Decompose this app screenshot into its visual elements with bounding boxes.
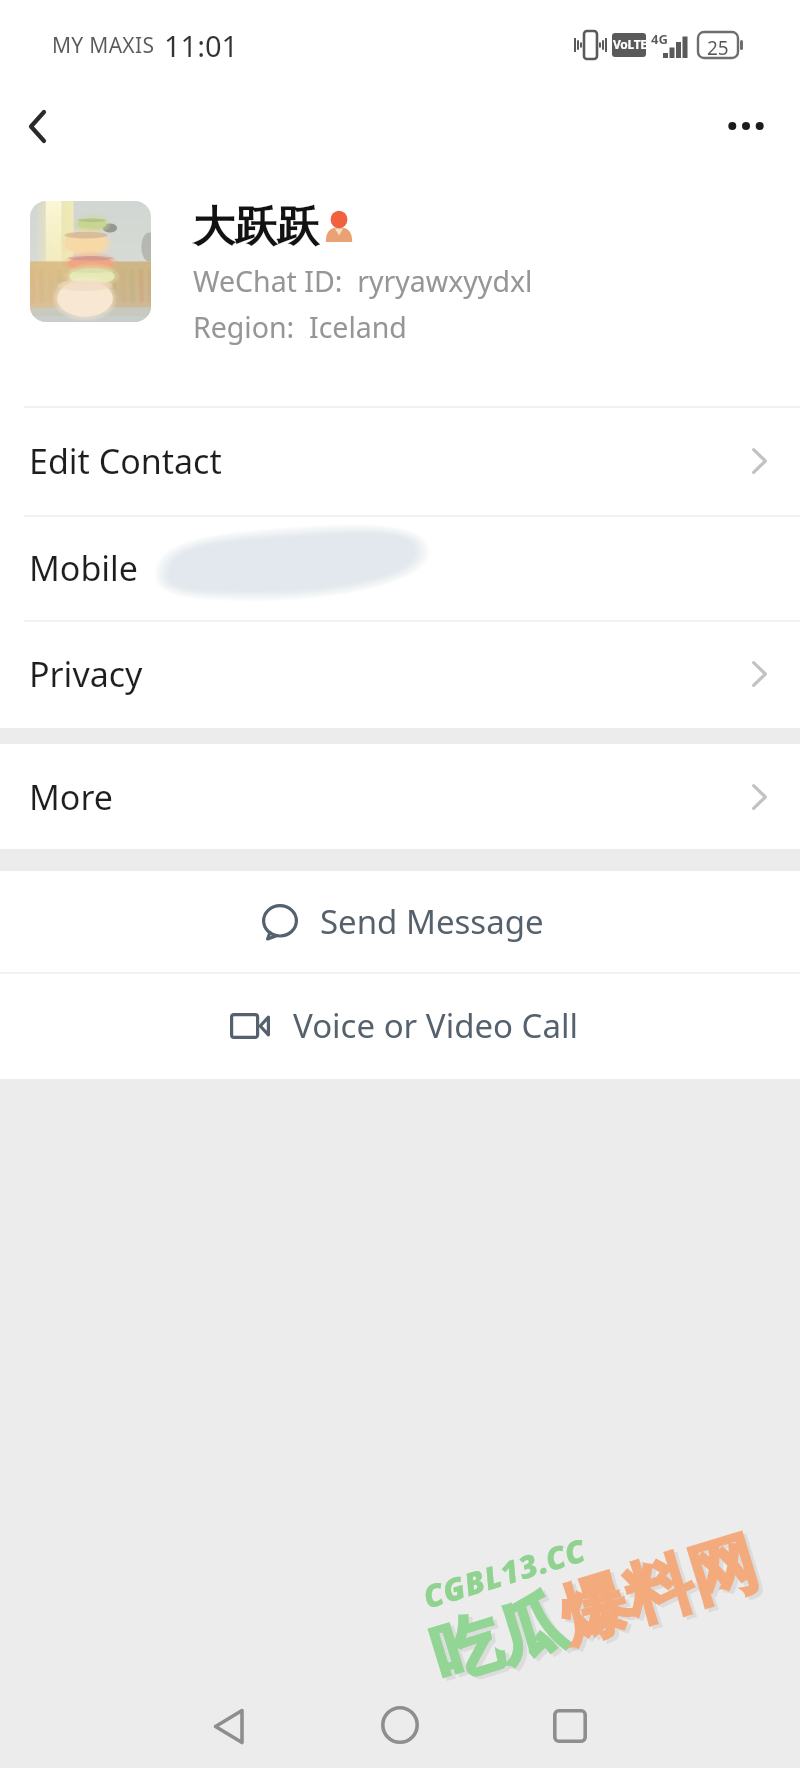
staticText: 11:01 <box>164 26 239 65</box>
staticText: Send Message <box>320 899 544 944</box>
staticText: Privacy <box>29 651 143 697</box>
button[interactable]: Back <box>182 1680 274 1768</box>
staticText: 25 <box>707 35 729 61</box>
staticText: 爆料网 <box>550 1520 767 1659</box>
button[interactable]: Send Message <box>0 871 800 972</box>
button[interactable]: Profile photo <box>30 201 151 322</box>
staticText: MY MAXIS <box>52 31 155 60</box>
staticText: CGBL13.CC <box>418 1528 591 1618</box>
button[interactable]: Voice or Video Call <box>0 972 800 1079</box>
staticText: WeChat ID: ryryawxyydxl <box>193 262 533 301</box>
button[interactable]: More <box>0 744 800 849</box>
staticText: More <box>29 774 113 820</box>
staticText: 4G <box>651 30 668 48</box>
button[interactable]: Edit Contact <box>0 406 800 515</box>
button[interactable]: Back <box>0 89 74 163</box>
staticText: Mobile <box>29 545 139 591</box>
button[interactable]: Recent apps <box>524 1680 616 1768</box>
staticText: VoLTE <box>613 36 647 52</box>
staticText: 大跃跃 <box>193 201 319 254</box>
staticText: 吃瓜 <box>422 1579 575 1698</box>
button[interactable]: Home <box>354 1679 446 1768</box>
staticText: Region: Iceland <box>193 308 407 347</box>
staticText: 吃瓜爆料网 <box>426 1523 771 1701</box>
staticText: Edit Contact <box>29 438 222 484</box>
button[interactable]: More options <box>706 86 786 166</box>
staticText: Voice or Video Call <box>293 1003 578 1048</box>
button[interactable]: Mobile <box>0 515 800 620</box>
button[interactable]: Privacy <box>0 620 800 728</box>
